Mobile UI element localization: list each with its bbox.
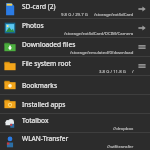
staticText: WLAN-Transfer xyxy=(22,134,69,143)
button[interactable]: Installed apps xyxy=(0,95,150,113)
staticText: //wifitransfer xyxy=(107,143,134,149)
button[interactable]: Open SD-card (2) xyxy=(136,0,148,18)
staticText: Bookmarks xyxy=(22,81,58,90)
staticText: /storage/extSdCard xyxy=(94,11,134,17)
button[interactable]: SD-card (2) xyxy=(0,0,150,18)
button[interactable]: Photos xyxy=(0,19,150,37)
button[interactable]: Bookmarks xyxy=(0,76,150,94)
button[interactable]: Open Photos xyxy=(136,19,148,37)
button[interactable]: More options xyxy=(136,38,148,56)
staticText: Downloaded files xyxy=(22,40,76,49)
staticText: /storage/emulated/0/download xyxy=(70,49,134,55)
staticText: //dropbox xyxy=(113,125,134,131)
staticText: 9.8 G / 29.7 G xyxy=(61,11,88,17)
staticText: Installed apps xyxy=(22,100,66,109)
button[interactable]: Totalbox xyxy=(0,114,150,132)
button[interactable]: WLAN-Transfer xyxy=(0,133,150,150)
staticText: 3.8 G / 11.8 G xyxy=(99,68,126,74)
staticText: / xyxy=(132,68,134,74)
staticText: SD-card (2) xyxy=(22,2,56,11)
button[interactable]: Downloaded files xyxy=(0,38,150,56)
button[interactable]: More options xyxy=(136,57,148,75)
staticText: /storage/extSdCard/DCIM/Camera xyxy=(64,30,134,36)
staticText: Totalbox xyxy=(22,116,49,125)
staticText: File system root xyxy=(22,59,71,68)
staticText: Photos xyxy=(22,21,44,30)
button[interactable]: File system root xyxy=(0,57,150,75)
